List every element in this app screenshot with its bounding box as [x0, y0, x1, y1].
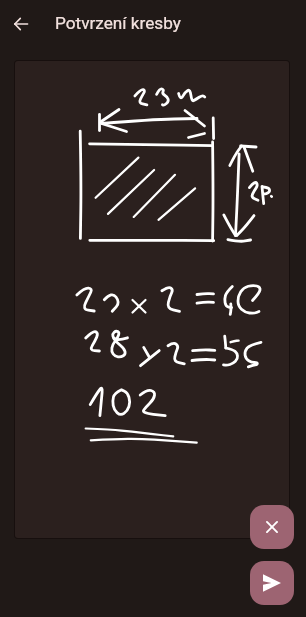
button[interactable]: Back — [6, 9, 36, 39]
staticText: Potvrzení kresby — [55, 13, 181, 33]
button[interactable]: Cancel — [250, 505, 294, 549]
button[interactable]: Send — [250, 561, 294, 605]
